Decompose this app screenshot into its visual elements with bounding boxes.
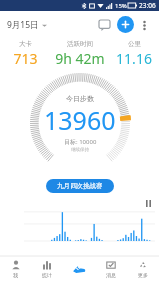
staticText: 公里: [128, 40, 141, 48]
button[interactable]: Activity: [63, 256, 95, 282]
button[interactable]: Messages: [94, 15, 114, 35]
staticText: 统计: [42, 272, 52, 278]
staticText: 活跃时间: [67, 40, 93, 48]
staticText: 13960: [44, 103, 116, 137]
button[interactable]: More options: [136, 17, 152, 33]
staticText: 更多: [138, 272, 148, 278]
button[interactable]: 公里: [109, 40, 159, 68]
button[interactable]: Pause: [143, 198, 153, 208]
button[interactable]: 9月15日: [7, 19, 47, 31]
staticText: 今日步数: [66, 94, 94, 103]
staticText: 713: [13, 49, 38, 68]
button[interactable]: 九月四次挑战赛: [46, 179, 114, 193]
staticText: 11.16: [116, 49, 152, 68]
button[interactable]: 大卡: [0, 40, 51, 68]
staticText: 九月四次挑战赛: [57, 182, 103, 190]
staticText: 23:06: [139, 1, 156, 10]
staticText: 大卡: [19, 40, 32, 48]
staticText: 9月15日: [7, 19, 39, 31]
button[interactable]: 我: [0, 256, 31, 282]
button[interactable]: 更多: [127, 256, 159, 282]
button[interactable]: 活跃时间: [51, 40, 109, 68]
staticText: 我: [13, 272, 18, 278]
staticText: 消息: [106, 272, 116, 278]
button[interactable]: 统计: [31, 256, 63, 282]
staticText: 目标: 10000: [64, 138, 97, 146]
button[interactable]: 消息: [95, 256, 127, 282]
staticText: 继续保持: [71, 147, 89, 153]
staticText: 15%: [115, 2, 127, 10]
button[interactable]: Step progress ring: [29, 72, 131, 174]
button[interactable]: Add: [117, 16, 134, 33]
staticText: 9h 42m: [55, 49, 105, 68]
